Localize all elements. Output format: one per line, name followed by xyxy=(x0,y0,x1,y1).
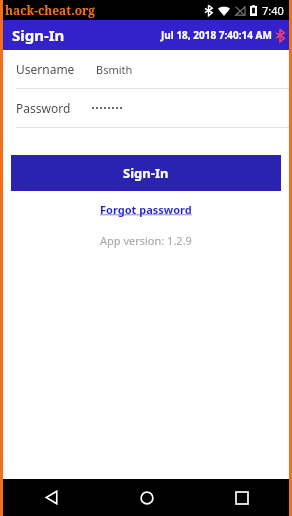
button[interactable]: Back xyxy=(3,479,99,516)
staticText: 7:40 xyxy=(262,3,284,18)
staticText: Sign-In xyxy=(123,164,169,182)
button[interactable]: Username xyxy=(3,50,289,89)
button[interactable]: Sign-In xyxy=(11,155,281,191)
button[interactable]: Home xyxy=(99,479,194,516)
staticText: Password xyxy=(16,100,71,116)
staticText: Username xyxy=(16,61,75,77)
staticText: App version: 1.2.9 xyxy=(100,233,192,248)
staticText: hack-cheat.org xyxy=(5,2,96,18)
staticText: Sign-In xyxy=(12,25,65,45)
staticText: Forgot password xyxy=(100,202,192,217)
button[interactable]: Recent apps xyxy=(194,479,289,516)
button[interactable]: Forgot password xyxy=(94,200,198,219)
staticText: Bsmith xyxy=(96,62,133,77)
button[interactable]: Password xyxy=(3,89,289,128)
staticText: Jul 18, 2018 7:40:14 AM xyxy=(161,28,272,42)
